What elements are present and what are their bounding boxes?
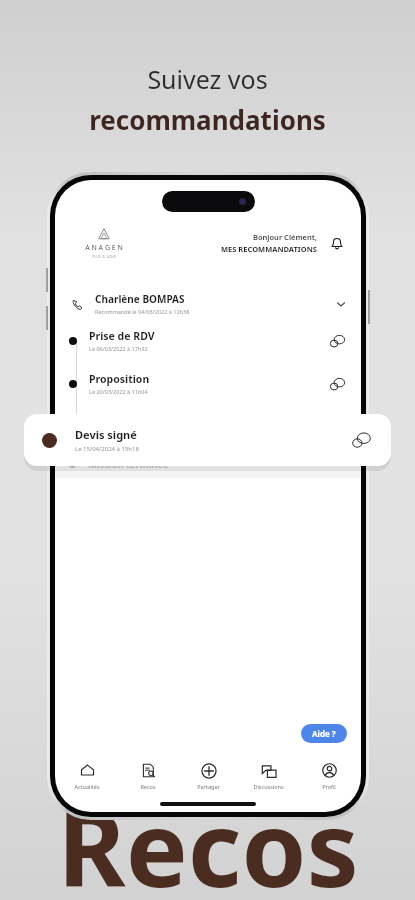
staticText: Proposition [89,372,150,386]
staticText: Le 15/04/2024 à 15h18 [75,445,139,453]
staticText: recommandations [89,102,326,137]
button[interactable]: Discussion [327,331,347,351]
staticText: Recommandé le 04/03/2022 à 12h38 [95,308,190,315]
staticText: Charlène BOMPAS [95,292,185,306]
button[interactable]: Discussion [349,428,373,452]
button[interactable]: Proposition [55,372,361,395]
staticText: Recos [57,776,359,900]
button[interactable]: Devis signé [24,414,391,466]
button[interactable]: Profil [301,756,357,790]
button[interactable]: Discussion [327,374,347,394]
staticText: Actualités [74,783,100,790]
staticText: Bonjour Clément, [253,232,317,242]
button[interactable]: Mission terminée [55,451,361,478]
button[interactable]: Prise de RDV [55,329,361,352]
button[interactable]: Actualités [59,756,115,790]
staticText: Profil [322,783,336,790]
staticText: Suivez vos [147,62,268,96]
button[interactable]: Recos [120,756,176,790]
staticText: Prise de RDV [89,329,155,343]
button[interactable]: Discussions [240,756,296,790]
staticText: Recos [140,783,156,790]
staticText: A N A G E N [85,243,123,253]
staticText: Le 06/03/2022 à 17h32 [89,345,148,352]
staticText: PLUS & AZUR [92,254,116,259]
staticText: MES RECOMMANDATIONS [221,244,317,254]
button[interactable]: Notifications [325,231,349,255]
staticText: Partager [197,783,220,790]
staticText: Devis signé [75,427,137,442]
button[interactable]: Charlène BOMPAS [55,290,361,317]
staticText: Le 20/03/2022 à 11h04 [89,388,148,395]
button[interactable]: Partager [180,756,236,790]
staticText: Discussions [253,783,284,790]
staticText: Mission terminée [88,458,169,471]
button[interactable]: Aide ? [301,724,347,743]
staticText: Aide ? [312,728,336,739]
